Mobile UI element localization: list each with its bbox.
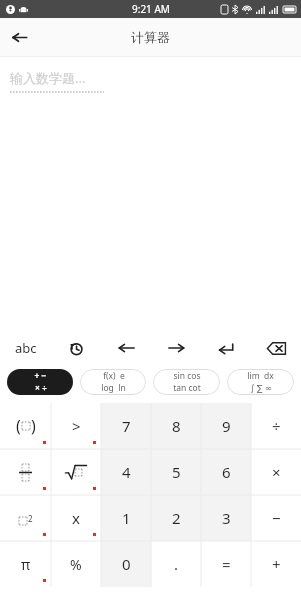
button[interactable]: Square root bbox=[51, 449, 101, 495]
staticText: log ln bbox=[101, 382, 126, 394]
staticText: 9:21 AM bbox=[132, 2, 170, 16]
button[interactable]: π bbox=[0, 541, 51, 587]
button[interactable]: Back bbox=[0, 18, 38, 56]
button[interactable]: Parentheses bbox=[0, 403, 51, 449]
staticText: ÷ bbox=[272, 416, 281, 436]
staticText: > bbox=[72, 416, 81, 436]
button[interactable]: x bbox=[51, 495, 101, 541]
staticText: sin cos bbox=[173, 370, 201, 382]
staticText: 5 bbox=[172, 462, 181, 482]
button[interactable]: + − bbox=[7, 369, 73, 395]
staticText: ( bbox=[16, 415, 21, 437]
button[interactable]: abc bbox=[0, 335, 51, 361]
button[interactable]: 7 bbox=[101, 403, 151, 449]
button[interactable]: lim dx bbox=[227, 369, 294, 395]
button[interactable]: Move left bbox=[101, 335, 151, 361]
button[interactable]: History bbox=[51, 335, 101, 361]
button[interactable]: f(x) e bbox=[80, 369, 146, 395]
staticText: 7 bbox=[122, 416, 131, 436]
button[interactable]: 8 bbox=[151, 403, 201, 449]
button[interactable]: > bbox=[51, 403, 101, 449]
button[interactable]: 1 bbox=[101, 495, 151, 541]
button[interactable]: Backspace bbox=[251, 335, 301, 361]
staticText: 9 bbox=[222, 416, 231, 436]
button[interactable]: Enter bbox=[201, 335, 251, 361]
staticText: + bbox=[272, 554, 281, 574]
staticText: 0 bbox=[122, 554, 131, 574]
staticText: 2 bbox=[28, 513, 33, 524]
staticText: = bbox=[222, 554, 231, 574]
staticText: lim dx bbox=[247, 370, 274, 382]
staticText: 计算器 bbox=[131, 29, 170, 45]
staticText: × ÷ bbox=[35, 382, 47, 394]
staticText: 6 bbox=[222, 462, 231, 482]
staticText: 4 bbox=[122, 462, 131, 482]
button[interactable]: 6 bbox=[201, 449, 251, 495]
button[interactable]: 2 bbox=[151, 495, 201, 541]
button[interactable]: 3 bbox=[201, 495, 251, 541]
button[interactable]: 4 bbox=[101, 449, 151, 495]
button[interactable]: − bbox=[251, 495, 301, 541]
staticText: abc bbox=[15, 339, 37, 357]
staticText: 2 bbox=[172, 508, 181, 528]
button[interactable]: Power bbox=[0, 495, 51, 541]
staticText: + − bbox=[34, 370, 47, 382]
button[interactable]: Move right bbox=[151, 335, 201, 361]
button[interactable]: × bbox=[251, 449, 301, 495]
button[interactable]: 5 bbox=[151, 449, 201, 495]
button[interactable]: + bbox=[251, 541, 301, 587]
staticText: x bbox=[72, 508, 80, 528]
button[interactable]: Fraction bbox=[0, 449, 51, 495]
staticText: 输入数学题... bbox=[10, 69, 86, 87]
staticText: % bbox=[70, 555, 82, 574]
button[interactable]: = bbox=[201, 541, 251, 587]
button[interactable]: 0 bbox=[101, 541, 151, 587]
button[interactable]: ÷ bbox=[251, 403, 301, 449]
staticText: 1 bbox=[122, 508, 131, 528]
staticText: ) bbox=[31, 415, 36, 437]
staticText: × bbox=[272, 462, 281, 482]
staticText: ∫ ∑ ∞ bbox=[250, 382, 272, 394]
staticText: 3 bbox=[222, 508, 231, 528]
staticText: π bbox=[21, 555, 31, 574]
staticText: 8 bbox=[172, 416, 181, 436]
staticText: f(x) e bbox=[103, 370, 125, 382]
button[interactable]: sin cos bbox=[153, 369, 220, 395]
button[interactable]: % bbox=[51, 541, 101, 587]
staticText: . bbox=[174, 554, 179, 574]
button[interactable]: 9 bbox=[201, 403, 251, 449]
staticText: − bbox=[272, 508, 281, 528]
button[interactable]: . bbox=[151, 541, 201, 587]
staticText: tan cot bbox=[173, 382, 201, 394]
